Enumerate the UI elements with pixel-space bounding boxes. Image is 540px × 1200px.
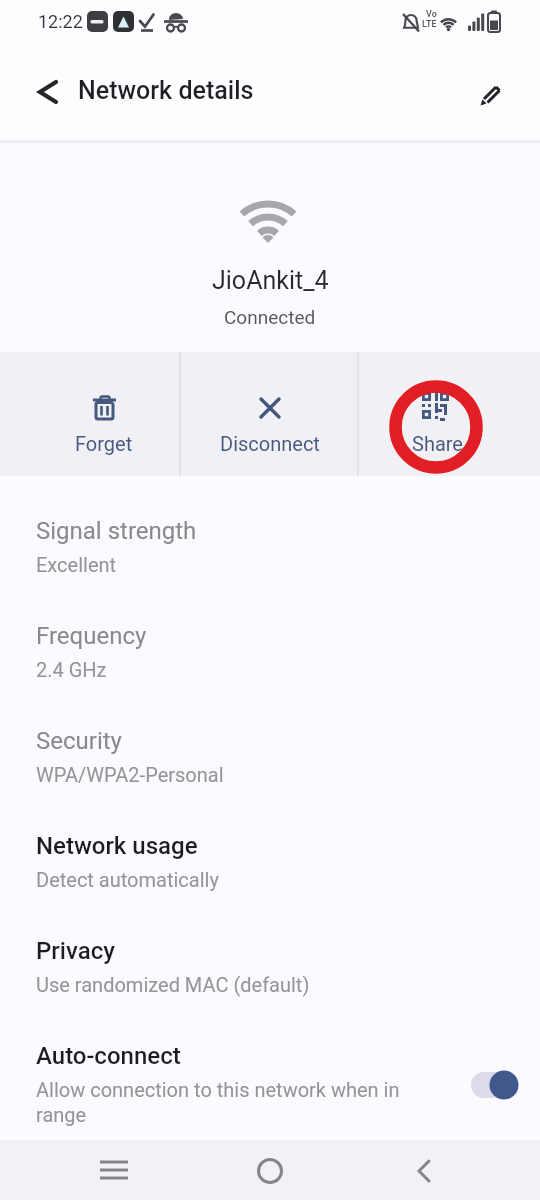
staticText: Detect automatically xyxy=(36,868,219,891)
staticText: Use randomized MAC (default) xyxy=(36,973,310,996)
button[interactable] xyxy=(0,352,180,476)
staticText: LTE xyxy=(422,19,437,30)
button[interactable]: Network usage xyxy=(0,832,540,891)
staticText: Auto-connect xyxy=(36,1042,181,1070)
button[interactable] xyxy=(469,1070,519,1100)
staticText: Privacy xyxy=(36,937,115,965)
staticText: Signal strength xyxy=(36,517,197,545)
staticText: Network usage xyxy=(36,832,198,860)
staticText: Connected xyxy=(224,306,316,328)
button[interactable] xyxy=(28,72,68,112)
staticText: WPA/WPA2-Personal xyxy=(36,763,224,786)
button[interactable] xyxy=(82,1140,146,1200)
staticText: Allow connection to this network when in… xyxy=(36,1078,426,1127)
button[interactable] xyxy=(468,70,512,114)
staticText: Frequency xyxy=(36,622,147,650)
staticText: Excellent xyxy=(36,553,117,576)
button[interactable] xyxy=(180,352,358,476)
staticText: Share xyxy=(412,432,463,455)
button[interactable]: Security xyxy=(0,727,540,786)
staticText: JioAnkit_4 xyxy=(212,266,329,295)
button[interactable] xyxy=(238,1140,302,1200)
button[interactable]: Signal strength xyxy=(0,517,540,576)
staticText: Security xyxy=(36,727,122,755)
staticText: Network details xyxy=(78,76,254,105)
button[interactable] xyxy=(358,352,540,476)
button[interactable]: Privacy xyxy=(0,937,540,996)
staticText: Disconnect xyxy=(220,432,320,455)
button[interactable]: Frequency xyxy=(0,622,540,681)
button[interactable] xyxy=(392,1140,456,1200)
staticText: Vo xyxy=(426,9,437,20)
staticText: 2.4 GHz xyxy=(36,658,107,681)
staticText: Forget xyxy=(75,432,133,455)
staticText: 12:22 xyxy=(38,11,83,32)
button[interactable]: Auto-connect xyxy=(0,1042,540,1127)
